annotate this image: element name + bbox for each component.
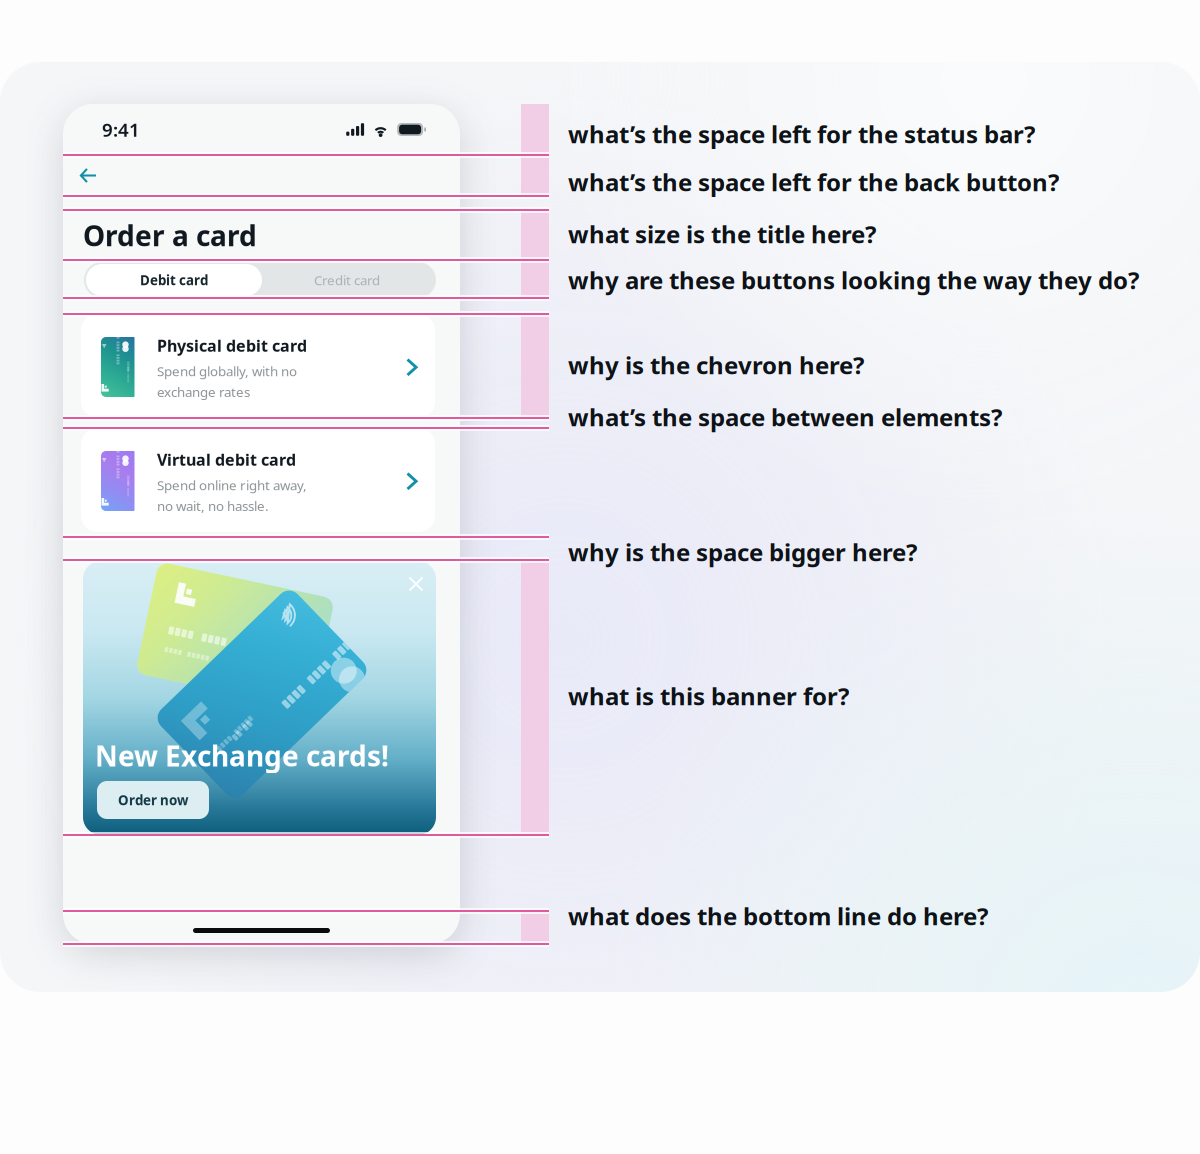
staticText: Spend globally, with no bbox=[157, 362, 297, 380]
staticText: what’s the space left for the back butto… bbox=[568, 166, 1059, 198]
staticText: what’s the space between elements? bbox=[568, 401, 1002, 433]
button[interactable]: Virtual debit card bbox=[81, 428, 435, 532]
staticText: why are these buttons looking the way th… bbox=[568, 264, 1139, 296]
button[interactable]: Order now bbox=[97, 781, 209, 819]
button[interactable]: Close banner bbox=[399, 567, 433, 601]
button[interactable]: Back bbox=[67, 155, 109, 196]
staticText: New Exchange cards! bbox=[95, 737, 389, 774]
staticText: Virtual debit card bbox=[157, 449, 296, 470]
staticText: what size is the title here? bbox=[568, 218, 876, 250]
staticText: why is the space bigger here? bbox=[568, 536, 917, 568]
staticText: Spend online right away, bbox=[157, 476, 307, 494]
staticText: Physical debit card bbox=[157, 335, 307, 356]
staticText: 9:41 bbox=[102, 117, 140, 142]
button[interactable]: Debit card bbox=[86, 264, 262, 296]
staticText: what is this banner for? bbox=[568, 680, 849, 712]
staticText: Debit card bbox=[140, 271, 208, 289]
staticText: Order a card bbox=[83, 217, 257, 254]
staticText: what does the bottom line do here? bbox=[568, 900, 988, 932]
button[interactable]: Physical debit card bbox=[81, 314, 435, 418]
staticText: Order now bbox=[118, 791, 188, 809]
staticText: no wait, no hassle. bbox=[157, 497, 269, 515]
staticText: exchange rates bbox=[157, 383, 250, 401]
staticText: why is the chevron here? bbox=[568, 349, 864, 381]
staticText: what’s the space left for the status bar… bbox=[568, 118, 1035, 150]
button[interactable]: Credit card bbox=[260, 264, 434, 296]
staticText: Credit card bbox=[314, 271, 380, 289]
